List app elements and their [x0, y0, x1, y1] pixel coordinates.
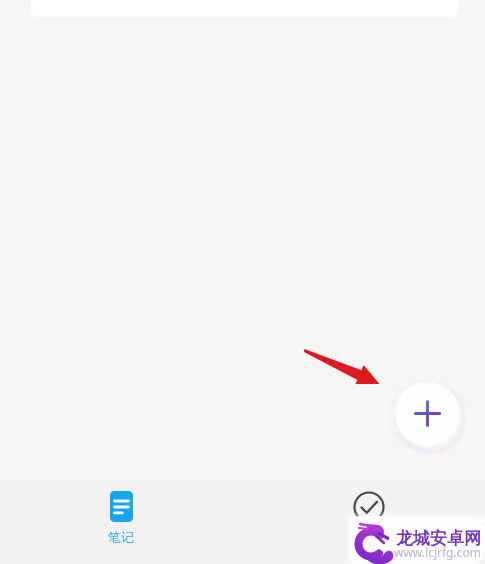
- button[interactable]: Add note: [394, 380, 460, 446]
- staticText: 笔记: [108, 529, 134, 545]
- staticText: 龙城安卓网: [396, 528, 481, 549]
- staticText: www.lcjrfg.com: [394, 544, 481, 560]
- button[interactable]: Tasks: [344, 488, 394, 548]
- button[interactable]: 笔记: [96, 488, 146, 548]
